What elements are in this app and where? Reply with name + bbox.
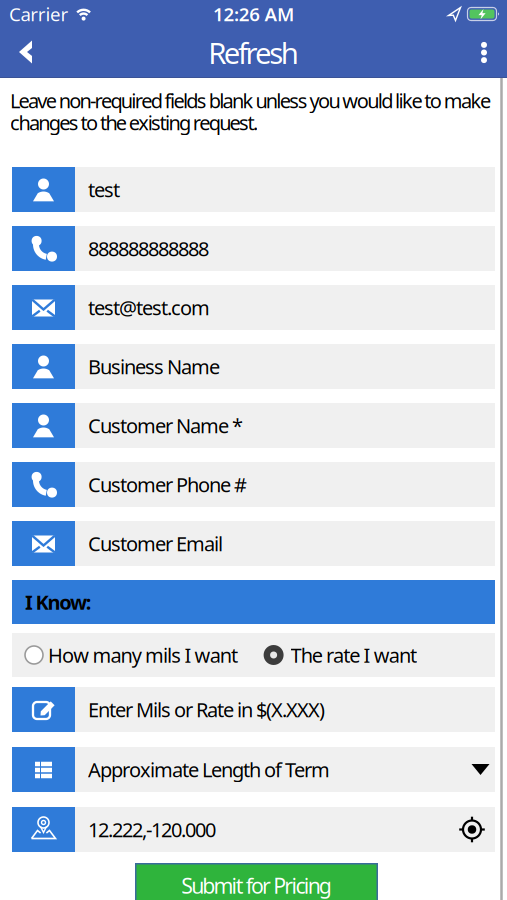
button[interactable]: The rate I want xyxy=(264,642,417,668)
button[interactable]: Business Name xyxy=(12,344,495,389)
staticText: 12.222,-120.000 xyxy=(88,816,216,843)
button[interactable]: Submit for Pricing xyxy=(132,863,375,900)
button[interactable]: How many mils I want xyxy=(12,642,238,668)
button[interactable]: Approximate Length of Term xyxy=(12,747,495,792)
staticText: Approximate Length of Term xyxy=(88,756,330,783)
button[interactable]: Customer Email xyxy=(12,521,495,566)
staticText: changes to the existing request. xyxy=(10,109,258,136)
staticText: test@test.com xyxy=(88,294,210,321)
staticText: Refresh xyxy=(208,33,299,72)
staticText: Customer Phone # xyxy=(88,471,247,498)
staticText: 12:26 AM xyxy=(213,2,294,26)
button[interactable]: Back xyxy=(8,32,42,72)
button[interactable]: test xyxy=(12,167,495,212)
staticText: 888888888888 xyxy=(88,235,209,262)
staticText: Customer Name * xyxy=(88,412,243,439)
staticText: Enter Mils or Rate in $(X.XXX) xyxy=(88,696,325,723)
button[interactable]: test@test.com xyxy=(12,285,495,330)
button[interactable]: Enter Mils or Rate in $(X.XXX) xyxy=(12,687,495,732)
staticText: How many mils I want xyxy=(48,642,238,668)
button[interactable]: More options xyxy=(469,32,499,72)
staticText: Customer Email xyxy=(88,530,223,557)
button[interactable]: Use current location xyxy=(457,814,487,844)
button[interactable]: Customer Name * xyxy=(12,403,495,448)
staticText: test xyxy=(88,176,120,203)
staticText: I Know: xyxy=(25,589,92,615)
staticText: Business Name xyxy=(88,353,220,380)
staticText: Leave non-required fields blank unless y… xyxy=(10,87,491,114)
staticText: Carrier xyxy=(9,2,69,26)
staticText: Submit for Pricing xyxy=(181,871,332,900)
staticText: The rate I want xyxy=(291,642,417,668)
button[interactable]: Customer Phone # xyxy=(12,462,495,507)
button[interactable]: 888888888888 xyxy=(12,226,495,271)
